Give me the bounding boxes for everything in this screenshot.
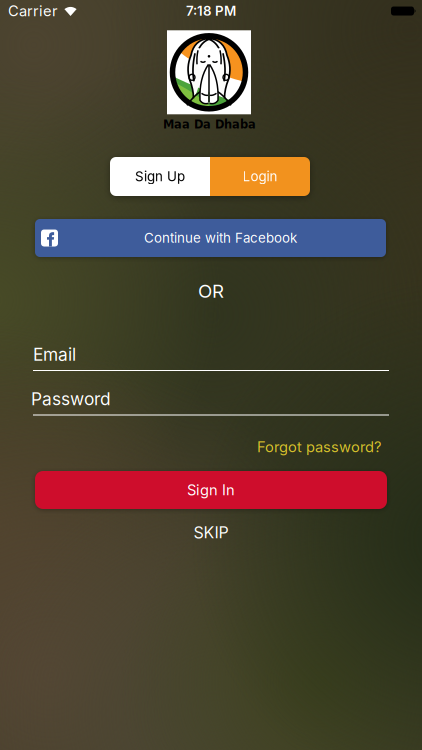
button[interactable]: Password xyxy=(33,380,389,424)
staticText: Sign In xyxy=(187,481,235,499)
button[interactable]: Login xyxy=(210,157,310,196)
button[interactable]: Forgot password? xyxy=(257,438,381,456)
button[interactable]: Continue with Facebook xyxy=(35,219,386,257)
staticText: Login xyxy=(242,169,277,184)
staticText: OR xyxy=(198,280,224,302)
staticText: 7:18 PM xyxy=(186,3,236,19)
button[interactable]: Sign Up xyxy=(110,157,210,196)
staticText: Sign Up xyxy=(135,169,185,184)
staticText: Email xyxy=(33,344,76,365)
button[interactable]: Sign In xyxy=(35,471,387,509)
staticText: Carrier xyxy=(8,2,58,20)
button[interactable]: SKIP xyxy=(193,523,228,542)
staticText: SKIP xyxy=(193,523,228,542)
staticText: Forgot password? xyxy=(257,438,381,456)
staticText: Maa Da Dhaba xyxy=(163,117,256,131)
staticText: Continue with Facebook xyxy=(144,230,297,246)
staticText: Password xyxy=(31,389,111,409)
button[interactable]: Email xyxy=(33,336,389,380)
